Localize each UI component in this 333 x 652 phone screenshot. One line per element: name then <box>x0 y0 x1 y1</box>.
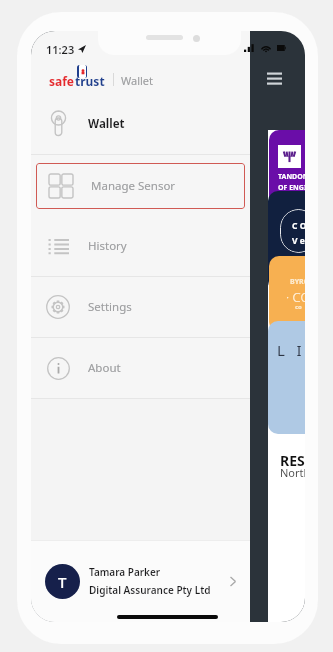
staticText: T <box>58 572 67 592</box>
staticText: L I <box>277 340 302 360</box>
button[interactable]: Manage Sensor <box>36 163 245 209</box>
staticText: co <box>295 303 302 311</box>
staticText: Settings <box>88 299 132 315</box>
staticText: Tamara Parker <box>89 565 161 579</box>
button[interactable]: Wallet <box>31 94 250 154</box>
staticText: C O <box>292 220 305 232</box>
staticText: RESIDENT <box>280 451 305 470</box>
button[interactable]: History <box>31 216 250 276</box>
staticText: Northern <box>280 465 305 480</box>
staticText: About <box>88 360 121 376</box>
staticText: 11:23 <box>46 42 75 55</box>
staticText: BYRO <box>290 277 305 287</box>
staticText: Wallet <box>121 73 154 86</box>
staticText: Wallet <box>88 116 125 132</box>
button[interactable]: About <box>31 338 250 398</box>
button[interactable]: T <box>31 541 250 622</box>
button[interactable]: Settings <box>31 277 250 337</box>
staticText: History <box>88 238 127 254</box>
staticText: trust <box>75 73 105 86</box>
staticText: · CO <box>286 288 305 306</box>
staticText: TANDON <box>278 172 305 182</box>
staticText: Digital Assurance Pty Ltd <box>89 583 211 597</box>
staticText: OF ENGI <box>278 183 305 193</box>
staticText: Manage Sensor <box>91 178 176 194</box>
staticText: V e <box>292 235 305 247</box>
staticText: safe <box>49 73 75 86</box>
button[interactable]: Open navigation menu <box>267 72 282 85</box>
